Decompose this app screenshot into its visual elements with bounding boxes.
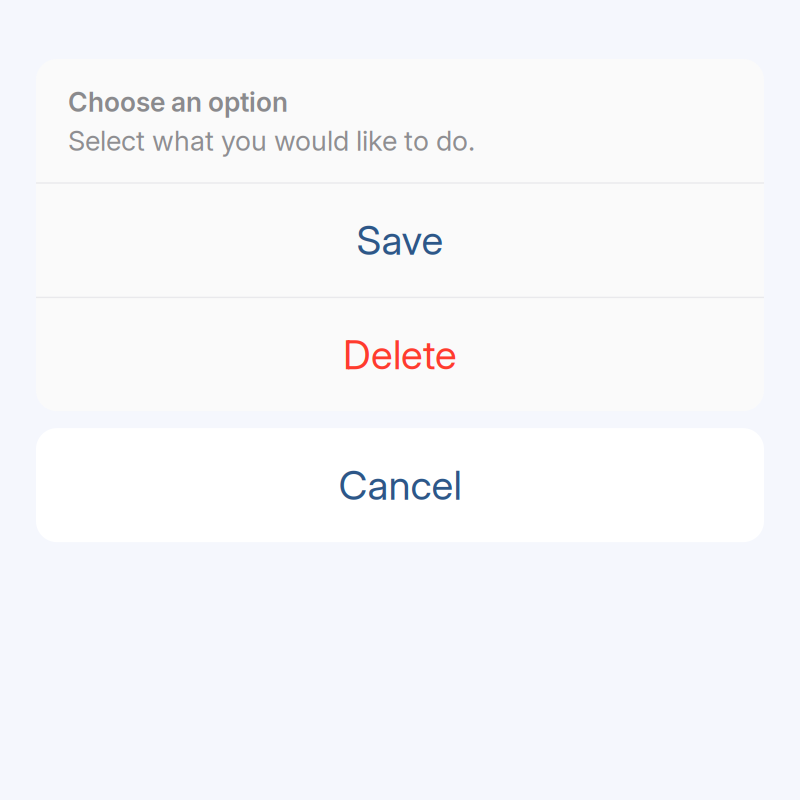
staticText: Cancel (338, 461, 461, 509)
button[interactable]: Delete (36, 298, 764, 411)
staticText: Choose an option (68, 86, 288, 118)
button[interactable]: Save (36, 184, 764, 297)
staticText: Select what you would like to do. (68, 124, 475, 157)
staticText: Save (356, 216, 443, 264)
button[interactable]: Cancel (36, 428, 764, 542)
staticText: Delete (343, 330, 457, 379)
